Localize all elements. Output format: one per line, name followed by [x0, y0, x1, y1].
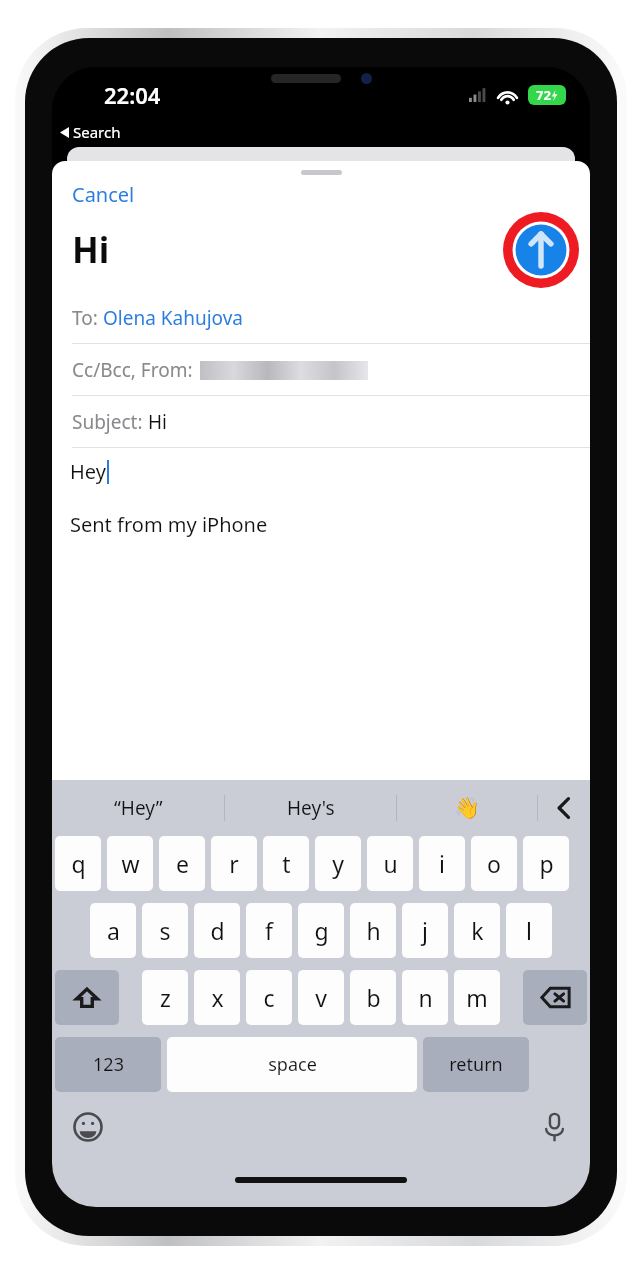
button[interactable]: l [506, 903, 552, 958]
button[interactable]: Dictation [536, 1109, 572, 1145]
staticText: j [422, 915, 428, 946]
staticText: Hi [148, 409, 167, 435]
button[interactable]: return [423, 1037, 529, 1092]
button[interactable]: n [402, 970, 448, 1025]
staticText: 22:04 [104, 80, 161, 110]
button[interactable]: c [246, 970, 292, 1025]
staticText: Olena Kahujova [103, 305, 244, 331]
button[interactable]: i [419, 836, 465, 891]
button[interactable]: q [55, 836, 101, 891]
staticText: Subject: [72, 409, 148, 435]
button[interactable]: g [298, 903, 344, 958]
button[interactable]: Shift [55, 970, 119, 1025]
staticText: 72 [536, 86, 551, 104]
button[interactable]: Backspace [523, 970, 587, 1025]
staticText: r [229, 848, 239, 879]
button[interactable]: z [142, 970, 188, 1025]
staticText: d [210, 915, 225, 946]
button[interactable]: s [142, 903, 188, 958]
staticText: m [466, 982, 488, 1013]
button[interactable]: e [159, 836, 205, 891]
button[interactable]: h [350, 903, 396, 958]
staticText: n [418, 982, 433, 1013]
button[interactable]: “Hey” [52, 780, 224, 836]
button[interactable]: j [402, 903, 448, 958]
staticText: Sent from my iPhone [70, 511, 268, 538]
staticText: Hey [70, 458, 106, 485]
staticText: t [282, 848, 291, 879]
button[interactable]: Hey's [225, 780, 396, 836]
staticText: return [449, 1052, 503, 1077]
staticText: Search [73, 122, 121, 142]
button[interactable]: m [454, 970, 500, 1025]
button[interactable]: r [211, 836, 257, 891]
staticText: 👋 [454, 796, 481, 821]
button[interactable]: Cancel [72, 181, 135, 208]
staticText: b [366, 982, 381, 1013]
staticText: 123 [93, 1052, 124, 1077]
button[interactable]: Subject: [52, 396, 590, 447]
button[interactable]: k [454, 903, 500, 958]
staticText: u [383, 848, 398, 879]
button[interactable]: p [523, 836, 569, 891]
staticText: e [176, 848, 189, 879]
staticText: g [314, 915, 329, 946]
button[interactable]: 123 [55, 1037, 161, 1092]
button[interactable]: u [367, 836, 413, 891]
staticText: “Hey” [114, 795, 163, 821]
button[interactable]: d [194, 903, 240, 958]
button[interactable]: v [298, 970, 344, 1025]
staticText: k [471, 915, 484, 946]
button[interactable]: To: [52, 292, 590, 343]
button[interactable]: b [350, 970, 396, 1025]
staticText: x [211, 982, 224, 1013]
button[interactable]: w [107, 836, 153, 891]
staticText: c [263, 982, 275, 1013]
staticText: y [332, 848, 344, 879]
staticText: v [315, 982, 327, 1013]
staticText: q [71, 848, 86, 879]
staticText: a [107, 915, 120, 946]
button[interactable]: Expand [538, 780, 590, 836]
button[interactable]: a [90, 903, 136, 958]
button[interactable]: 👋 [397, 780, 537, 836]
staticText: o [487, 848, 501, 879]
button[interactable]: Send [503, 212, 579, 288]
staticText: p [539, 848, 554, 879]
staticText: Cc/Bcc, From: [72, 357, 198, 383]
staticText: w [121, 848, 140, 879]
staticText: i [439, 848, 445, 879]
button[interactable]: Emoji [70, 1109, 106, 1145]
staticText: To: [72, 305, 103, 331]
button[interactable]: f [246, 903, 292, 958]
staticText: f [265, 915, 273, 946]
button[interactable]: space [167, 1037, 417, 1092]
button[interactable]: x [194, 970, 240, 1025]
staticText: space [268, 1052, 317, 1077]
staticText: Hey's [287, 795, 335, 821]
staticText: z [160, 982, 171, 1013]
staticText: l [526, 915, 532, 946]
button[interactable]: y [315, 836, 361, 891]
staticText: h [366, 915, 381, 946]
staticText: Hi [72, 226, 110, 274]
button[interactable]: t [263, 836, 309, 891]
staticText: s [159, 915, 171, 946]
button[interactable]: o [471, 836, 517, 891]
button[interactable]: Cc/Bcc, From: [52, 344, 590, 395]
